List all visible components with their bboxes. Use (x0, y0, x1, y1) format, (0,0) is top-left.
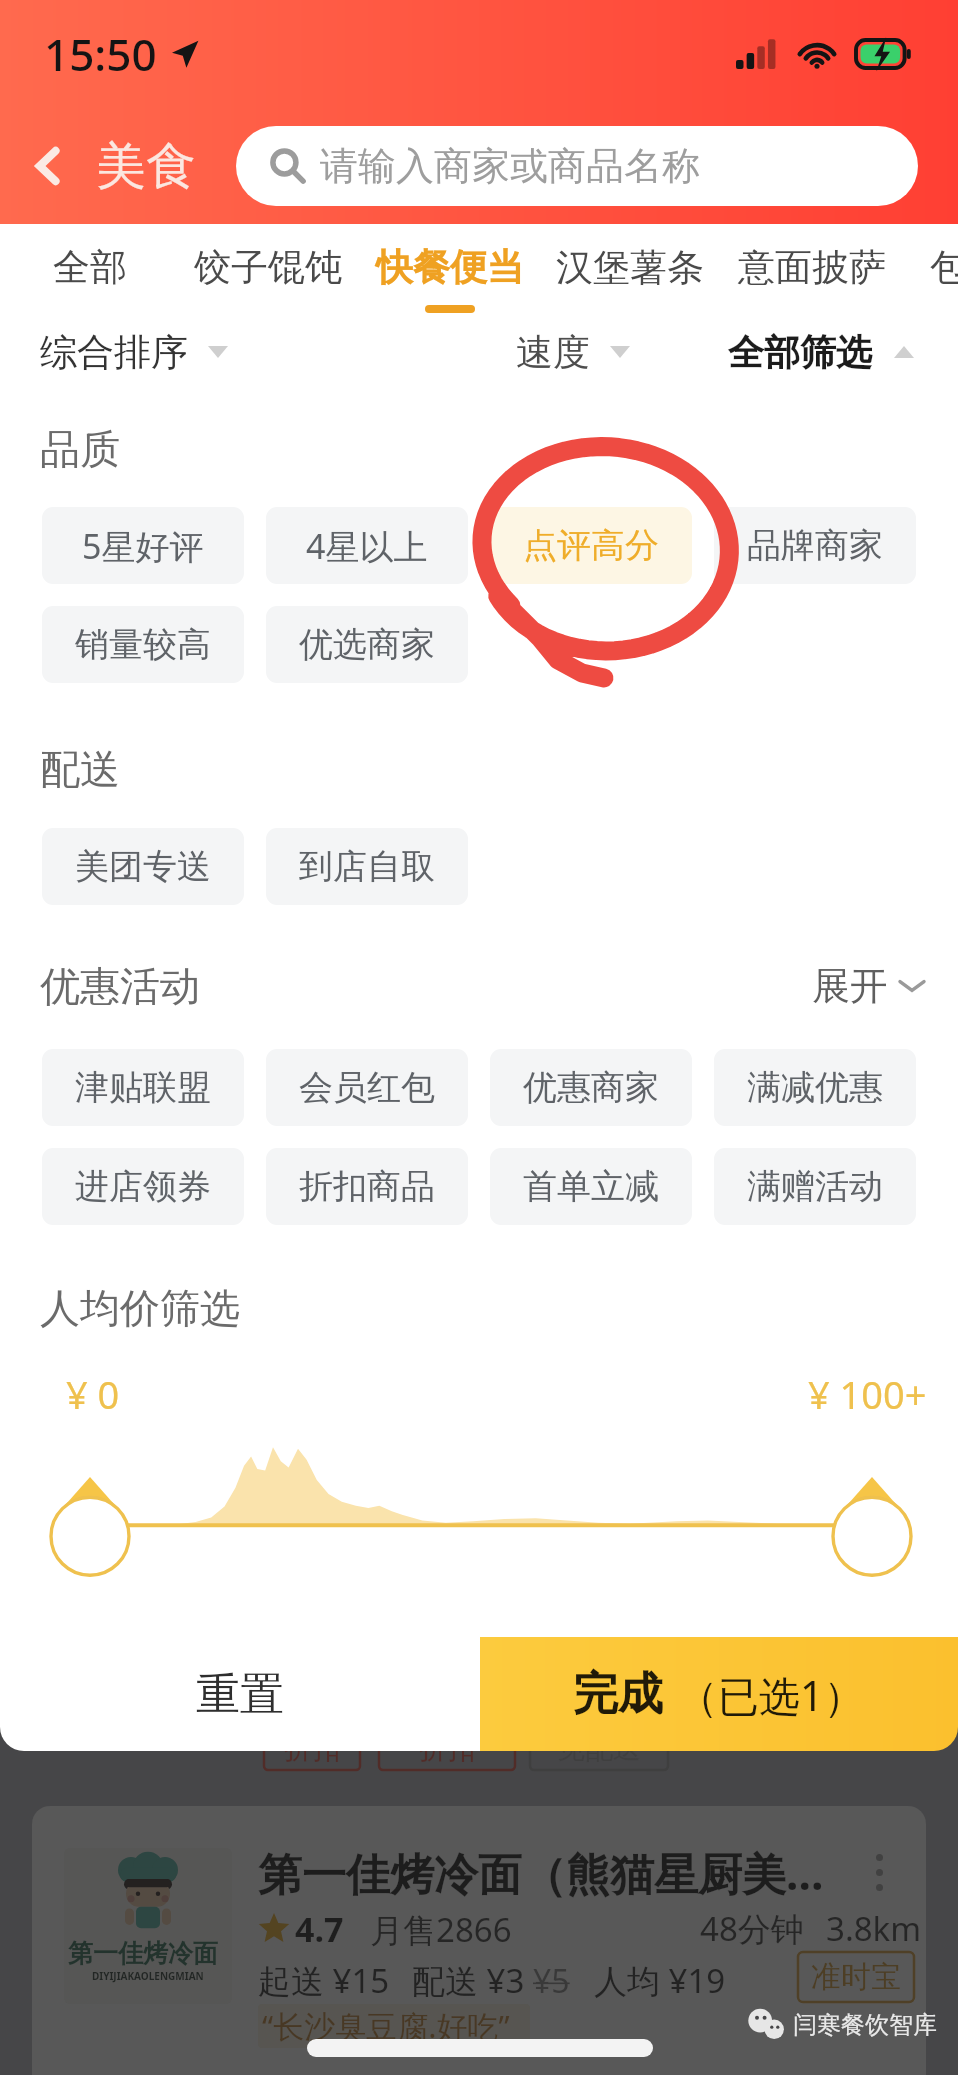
staticText: 品质 (40, 424, 120, 474)
button[interactable]: 速度 (516, 316, 630, 388)
staticText: 满减优惠 (747, 1066, 883, 1109)
button[interactable]: 展开 (812, 962, 924, 1010)
staticText: 免配送 (557, 1731, 641, 1766)
staticText: 48分钟 (700, 1906, 804, 1951)
button[interactable]: 4星以上 (266, 507, 468, 584)
button[interactable]: 完成 (480, 1637, 958, 1751)
button[interactable]: 折扣商品 (266, 1148, 468, 1225)
staticText: 速度 (516, 329, 590, 376)
staticText: 优惠活动 (40, 961, 200, 1011)
button[interactable]: 饺子馄饨 (176, 224, 360, 316)
staticText: 综合排序 (40, 329, 188, 376)
staticText: 展开 (812, 962, 888, 1010)
button[interactable]: 首单立减 (490, 1148, 692, 1225)
staticText: 配送 ¥3 (412, 1958, 525, 2003)
staticText: 3.8km (826, 1906, 922, 1951)
staticText: 全部 (53, 244, 127, 291)
staticText: 满赠活动 (747, 1165, 883, 1208)
staticText: 请输入商家或商品名称 (320, 142, 700, 190)
button[interactable]: 快餐便当 (358, 224, 542, 316)
staticText: 第一佳烤冷面（熊猫星厨美… (258, 1843, 824, 1903)
button[interactable]: 包 (856, 224, 958, 316)
staticText: 月售2866 (370, 1907, 512, 1952)
staticText: 准时宝 (811, 1958, 901, 1996)
staticText: 4.7 (295, 1906, 344, 1952)
staticText: 全部筛选 (728, 330, 872, 375)
button[interactable]: 优惠商家 (490, 1049, 692, 1126)
staticText: 配送 (40, 744, 120, 794)
staticText: 4星以上 (306, 523, 428, 569)
button[interactable]: 进店领券 (42, 1148, 244, 1225)
staticText: 15:50 (44, 24, 157, 84)
button[interactable]: Back (0, 118, 96, 214)
button[interactable]: 到店自取 (266, 828, 468, 905)
staticText: “长沙臭豆腐.好吃” (262, 2005, 510, 2047)
staticText: 点评高分 (523, 524, 659, 567)
button[interactable]: 津贴联盟 (42, 1049, 244, 1126)
staticText: 起送 ¥15 (258, 1958, 390, 2003)
staticText: 人均价筛选 (40, 1283, 240, 1333)
button[interactable]: 汉堡薯条 (538, 224, 722, 316)
button[interactable]: 重置 (0, 1637, 480, 1751)
staticText: 优惠商家 (523, 1066, 659, 1109)
button[interactable]: 美团专送 (42, 828, 244, 905)
staticText: 快餐便当 (376, 244, 524, 291)
staticText: 折扣 (284, 1731, 340, 1766)
staticText: 销量较高 (75, 623, 211, 666)
staticText: 进店领券 (75, 1165, 211, 1208)
button[interactable]: 优选商家 (266, 606, 468, 683)
staticText: 人均 ¥19 (594, 1958, 726, 2003)
button[interactable]: 点评高分 (490, 507, 692, 584)
button[interactable]: 综合排序 (40, 316, 228, 388)
staticText: 到店自取 (299, 845, 435, 888)
button[interactable]: 美食 (96, 135, 196, 198)
staticText: 完成 (573, 1666, 663, 1723)
staticText: ¥5 (533, 1959, 570, 2003)
button[interactable]: 满赠活动 (714, 1148, 916, 1225)
button[interactable]: 满减优惠 (714, 1049, 916, 1126)
staticText: 首单立减 (523, 1165, 659, 1208)
staticText: ¥ 100+ (808, 1368, 927, 1420)
staticText: 5星好评 (82, 523, 204, 569)
staticText: DIYIJIAKAOLENGMIAN (92, 1969, 204, 1983)
button[interactable]: 全部筛选 (728, 316, 914, 388)
staticText: 第一佳烤冷面 (68, 1938, 228, 1969)
staticText: 折扣 (419, 1731, 475, 1766)
button[interactable]: 品牌商家 (714, 507, 916, 584)
staticText: 包 (930, 244, 958, 291)
staticText: 品牌商家 (747, 524, 883, 567)
staticText: 饺子馄饨 (194, 244, 342, 291)
button[interactable]: 会员红包 (266, 1049, 468, 1126)
staticText: 意面披萨 (738, 244, 886, 291)
staticText: 优选商家 (299, 623, 435, 666)
staticText: ¥ 0 (66, 1368, 120, 1420)
button[interactable]: 意面披萨 (720, 224, 904, 316)
staticText: 重置 (196, 1667, 284, 1722)
staticText: 闫寒餐饮智库 (793, 2010, 937, 2040)
staticText: 津贴联盟 (75, 1066, 211, 1109)
staticText: 折扣商品 (299, 1165, 435, 1208)
staticText: 汉堡薯条 (556, 244, 704, 291)
button[interactable]: 全部 (0, 224, 182, 316)
staticText: 美团专送 (75, 845, 211, 888)
button[interactable]: 5星好评 (42, 507, 244, 584)
button[interactable]: 请输入商家或商品名称 (236, 126, 918, 206)
staticText: 会员红包 (299, 1066, 435, 1109)
button[interactable]: 销量较高 (42, 606, 244, 683)
staticText: （已选1） (677, 1667, 865, 1723)
